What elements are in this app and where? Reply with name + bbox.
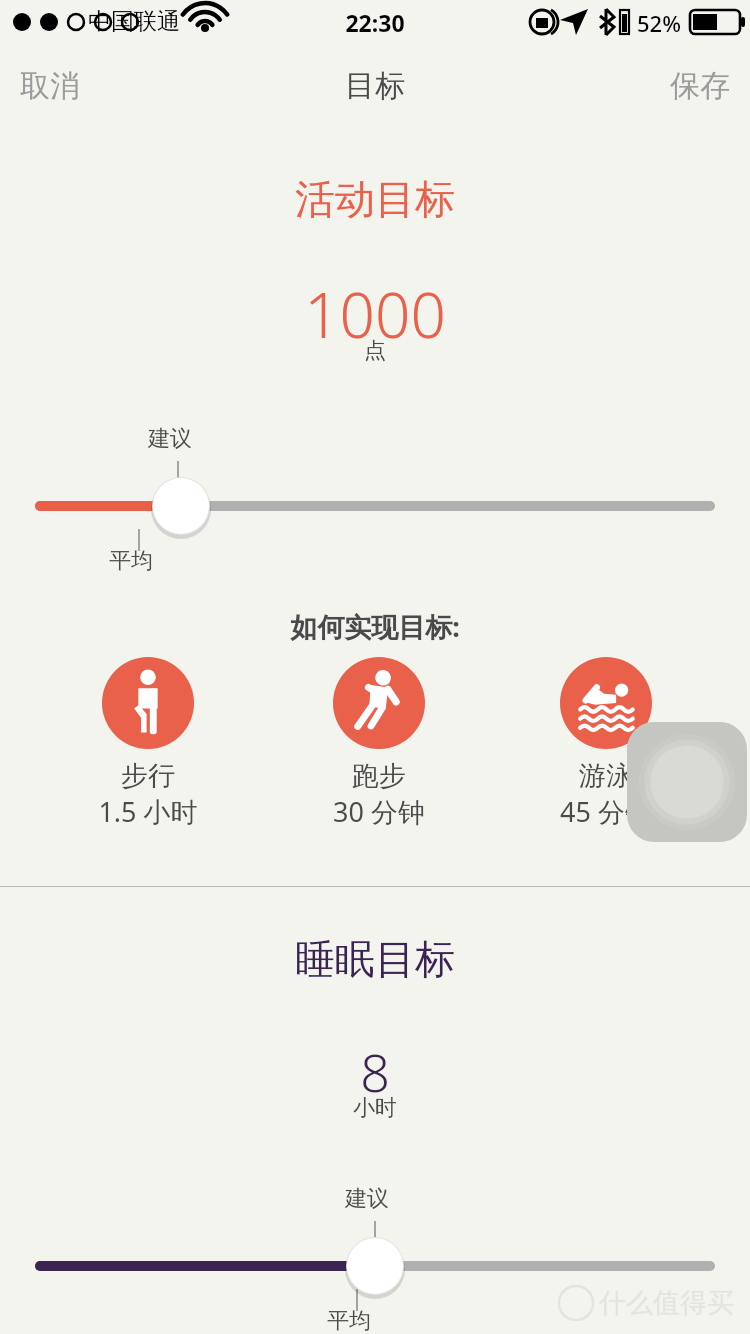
staticText: 点 — [0, 337, 750, 365]
staticText: 中国联通 — [88, 7, 180, 36]
button[interactable]: 步行 — [98, 657, 198, 830]
staticText: 平均 — [109, 547, 153, 575]
staticText: 步行 — [121, 759, 175, 793]
staticText: 30 分钟 — [333, 793, 425, 830]
staticText: 跑步 — [352, 759, 406, 793]
button[interactable]: More activities — [627, 722, 747, 842]
staticText: 取消 — [20, 67, 80, 105]
button[interactable]: Goal slider — [0, 425, 750, 575]
staticText: 22:30 — [0, 7, 750, 38]
button[interactable]: 取消 — [14, 61, 86, 111]
staticText: 建议 — [148, 425, 192, 453]
staticText: 如何实现目标: — [0, 608, 750, 645]
staticText: 45 分钟 — [560, 793, 652, 830]
staticText: 活动目标 — [0, 174, 750, 224]
staticText: 保存 — [670, 67, 730, 105]
staticText: 平均 — [327, 1307, 371, 1334]
staticText: 建议 — [345, 1185, 389, 1213]
button[interactable]: 保存 — [664, 61, 736, 111]
staticText: 1000 — [0, 272, 750, 356]
staticText: 小时 — [0, 1094, 750, 1122]
staticText: 游泳 — [579, 759, 633, 793]
button[interactable]: 游泳 — [560, 657, 652, 830]
staticText: 什么值得买 — [599, 1286, 734, 1320]
staticText: 8 — [0, 1036, 750, 1107]
button[interactable]: 跑步 — [333, 657, 425, 830]
staticText: 52% — [637, 8, 681, 38]
staticText: 睡眠目标 — [0, 934, 750, 984]
staticText: 目标 — [345, 67, 405, 105]
staticText: 1.5 小时 — [98, 793, 198, 830]
button[interactable]: Goal slider — [0, 1185, 750, 1334]
